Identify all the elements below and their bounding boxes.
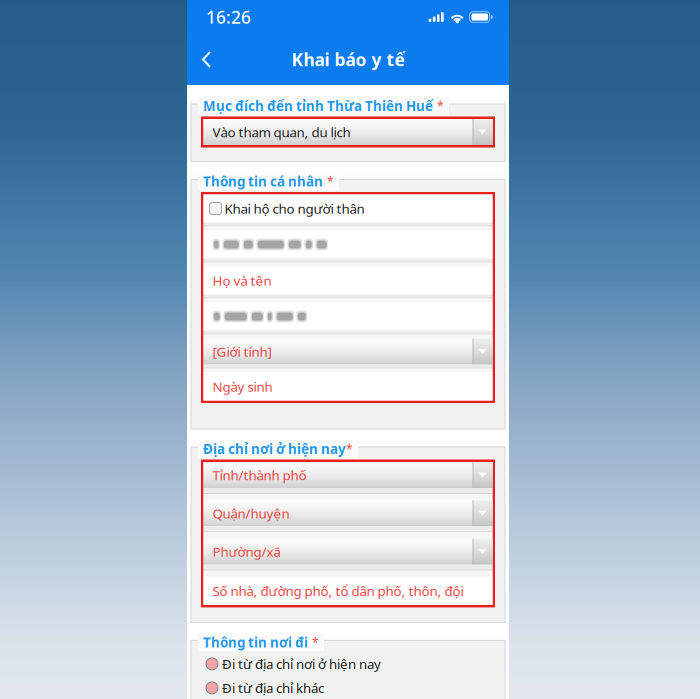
staticText: Ngày sinh <box>212 378 272 395</box>
staticText: Tỉnh/thành phố <box>212 466 306 484</box>
button[interactable]: [Giới tính] <box>203 338 492 364</box>
staticText: Thông tin nơi đi <box>203 633 308 651</box>
button[interactable]: Phường/xã <box>203 539 492 565</box>
staticText: Phường/xã <box>212 543 280 560</box>
staticText: Đi từ địa chỉ khác <box>222 679 324 697</box>
staticText: Quận/huyện <box>212 504 289 522</box>
staticText: 16:26 <box>206 5 251 28</box>
staticText: Thông tin cá nhân <box>203 172 323 190</box>
staticText: Địa chỉ nơi ở hiện nay <box>203 440 346 458</box>
staticText: Vào tham quan, du lịch <box>212 123 350 141</box>
staticText: Mục đích đến tỉnh Thừa Thiên Huế <box>203 97 433 115</box>
staticText: Số nhà, đường phố, tổ dân phố, thôn, đội <box>212 582 463 600</box>
button[interactable]: Back <box>187 42 224 76</box>
staticText: * <box>327 173 334 189</box>
button[interactable]: Vào tham quan, du lịch <box>203 119 492 145</box>
staticText: * <box>437 98 444 114</box>
button[interactable]: Tỉnh/thành phố <box>203 462 492 488</box>
button[interactable]: Khai hộ cho người thân <box>203 194 492 222</box>
button[interactable]: Quận/huyện <box>203 500 492 526</box>
staticText: Khai báo y tế <box>291 48 404 71</box>
staticText: [Giới tính] <box>212 343 271 360</box>
staticText: * <box>312 634 319 650</box>
staticText: Đi từ địa chỉ nơi ở hiện nay <box>222 655 381 673</box>
staticText: Họ và tên <box>212 272 271 289</box>
button[interactable]: Đi từ địa chỉ nơi ở hiện nay <box>206 653 495 675</box>
staticText: Khai hộ cho người thân <box>224 200 364 217</box>
staticText: * <box>346 441 353 457</box>
button[interactable]: Đi từ địa chỉ khác <box>206 677 495 699</box>
